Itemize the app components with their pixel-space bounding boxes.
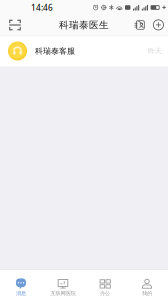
staticText: 互联网医院 xyxy=(50,290,75,297)
button[interactable]: Contacts xyxy=(130,15,149,35)
button[interactable]: Scan xyxy=(2,15,28,35)
button[interactable]: 消息 xyxy=(0,270,42,300)
button[interactable]: 科瑞泰客服 xyxy=(0,35,168,66)
staticText: 消息 xyxy=(16,290,26,297)
staticText: 办公 xyxy=(100,290,110,297)
staticText: 14:46 xyxy=(31,2,53,13)
staticText: 科瑞泰医生 xyxy=(59,19,109,31)
staticText: 科瑞泰客服 xyxy=(35,46,75,56)
staticText: 我的 xyxy=(142,290,152,297)
staticText: 昨天 xyxy=(148,47,162,55)
button[interactable]: 办公 xyxy=(84,270,126,300)
button[interactable]: Add xyxy=(149,15,168,35)
button[interactable]: 我的 xyxy=(126,270,168,300)
button[interactable]: 互联网医院 xyxy=(42,270,84,300)
